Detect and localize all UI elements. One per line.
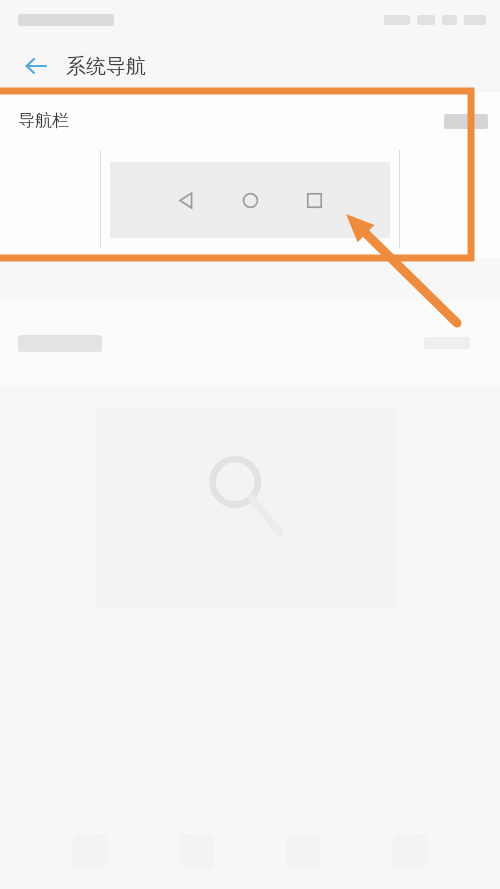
staticText: 系统导航 [66,54,146,79]
button[interactable]: Recents [296,182,332,218]
button[interactable]: Back [168,182,204,218]
button[interactable]: Back [110,162,390,238]
staticText: 导航栏 [18,110,69,131]
button[interactable]: Home [232,182,268,218]
button[interactable]: Back [14,44,58,88]
